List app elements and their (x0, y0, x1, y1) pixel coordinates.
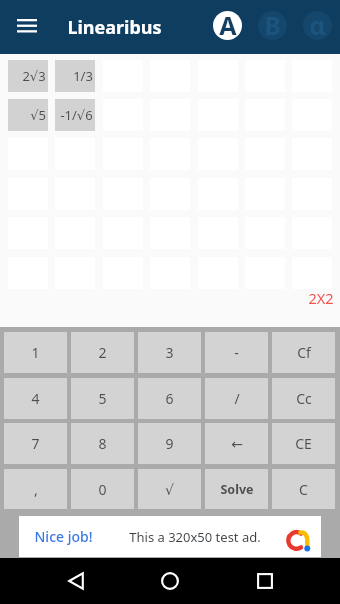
staticText: Linearibus (67, 15, 162, 40)
staticText: √ (165, 482, 174, 498)
button[interactable]: Cc (272, 378, 335, 419)
staticText: This a 320x50 test ad. (129, 528, 261, 546)
button[interactable]: Open navigation drawer (10, 9, 43, 42)
button[interactable]: 0 (71, 469, 134, 510)
button[interactable]: CE (272, 423, 335, 464)
button[interactable]: Matrix α (300, 8, 335, 43)
staticText: 2√3 (22, 67, 46, 85)
staticText: Solve (220, 481, 254, 498)
staticText: α (309, 11, 326, 37)
button[interactable]: Nice job! (19, 516, 321, 557)
staticText: 7 (31, 434, 40, 453)
staticText: Nice job! (34, 527, 93, 546)
button[interactable]: / (205, 378, 268, 419)
staticText: 6 (165, 389, 174, 408)
button[interactable]: - (205, 332, 268, 373)
staticText: Cf (297, 343, 311, 362)
staticText: 0 (98, 480, 107, 499)
button[interactable]: √5 (8, 99, 48, 131)
button[interactable]: Recent apps (243, 559, 287, 603)
staticText: 2 (98, 343, 107, 362)
staticText: , (34, 480, 38, 499)
staticText: - (234, 343, 239, 362)
staticText: / (234, 389, 240, 408)
button[interactable]: Home (148, 559, 192, 603)
button[interactable]: Matrix A (210, 8, 245, 43)
staticText: 4 (31, 389, 40, 408)
button[interactable]: 7 (4, 423, 67, 464)
staticText: Cc (296, 389, 312, 408)
button[interactable]: Back (54, 559, 98, 603)
button[interactable]: 1/3 (55, 60, 95, 92)
button[interactable]: √ (138, 469, 201, 510)
staticText: √5 (30, 106, 46, 124)
button[interactable]: C (272, 469, 335, 510)
staticText: 5 (98, 389, 107, 408)
button[interactable]: Cf (272, 332, 335, 373)
button[interactable]: Solve (205, 469, 268, 510)
button[interactable]: 2X2 (308, 288, 334, 308)
button[interactable]: -1/√6 (55, 99, 95, 131)
staticText: 3 (165, 343, 174, 362)
button[interactable]: 4 (4, 378, 67, 419)
staticText: -1/√6 (60, 106, 93, 124)
button[interactable]: 2 (71, 332, 134, 373)
staticText: 8 (98, 434, 107, 453)
staticText: C (299, 480, 308, 499)
staticText: ← (231, 436, 243, 452)
button[interactable]: ← (205, 423, 268, 464)
staticText: 1/3 (73, 67, 93, 85)
button[interactable]: Matrix B (255, 8, 290, 43)
staticText: CE (295, 434, 312, 453)
button[interactable]: 9 (138, 423, 201, 464)
button[interactable]: 8 (71, 423, 134, 464)
button[interactable]: 3 (138, 332, 201, 373)
button[interactable]: 5 (71, 378, 134, 419)
button[interactable]: , (4, 469, 67, 510)
staticText: B (264, 11, 281, 37)
button[interactable]: 1 (4, 332, 67, 373)
staticText: 2X2 (308, 288, 334, 308)
button[interactable]: 6 (138, 378, 201, 419)
staticText: 1 (31, 343, 40, 362)
button[interactable]: 2√3 (8, 60, 48, 92)
